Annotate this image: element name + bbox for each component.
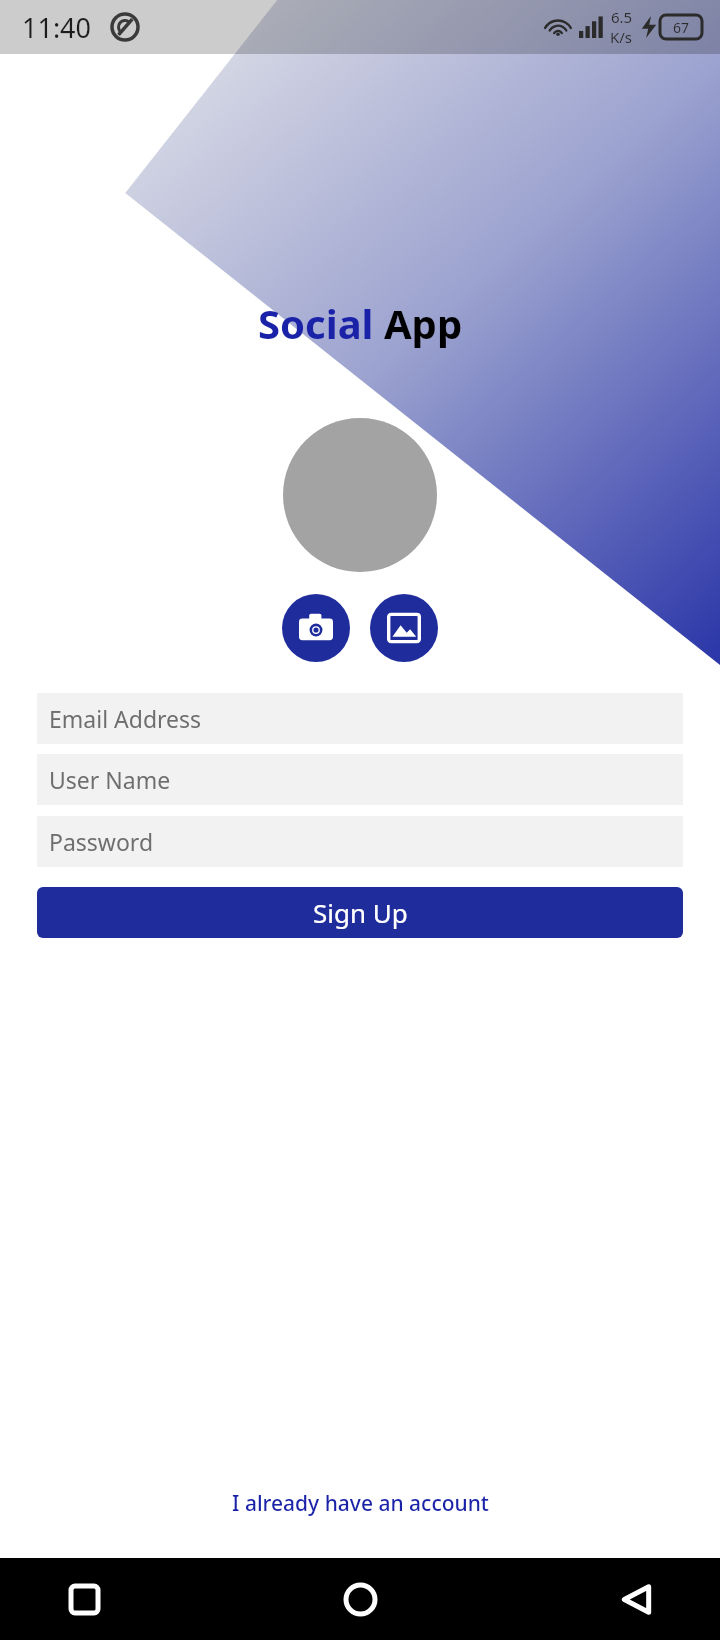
staticText: Email Address xyxy=(49,703,202,734)
staticText: K/s xyxy=(610,27,633,47)
button[interactable]: Recent apps xyxy=(54,1569,114,1629)
staticText: 67 xyxy=(673,18,690,37)
button[interactable]: Sign Up xyxy=(37,887,683,938)
button[interactable]: Back xyxy=(606,1569,666,1629)
staticText: Sign Up xyxy=(313,895,408,930)
staticText: Social App xyxy=(258,296,463,350)
staticText: 11:40 xyxy=(22,9,92,46)
button[interactable]: User Name xyxy=(37,754,683,805)
staticText: User Name xyxy=(49,764,171,795)
button[interactable]: I already have an account xyxy=(208,1479,513,1528)
staticText: Password xyxy=(49,826,154,857)
button[interactable]: Pick image from gallery xyxy=(370,594,438,662)
button[interactable]: Email Address xyxy=(37,693,683,744)
staticText: I already have an account xyxy=(232,1489,489,1518)
button[interactable]: Take photo with camera xyxy=(282,594,350,662)
button[interactable]: Profile photo xyxy=(283,418,437,572)
staticText: 6.5 xyxy=(611,7,633,27)
button[interactable]: Password xyxy=(37,816,683,867)
button[interactable]: Home xyxy=(330,1569,390,1629)
